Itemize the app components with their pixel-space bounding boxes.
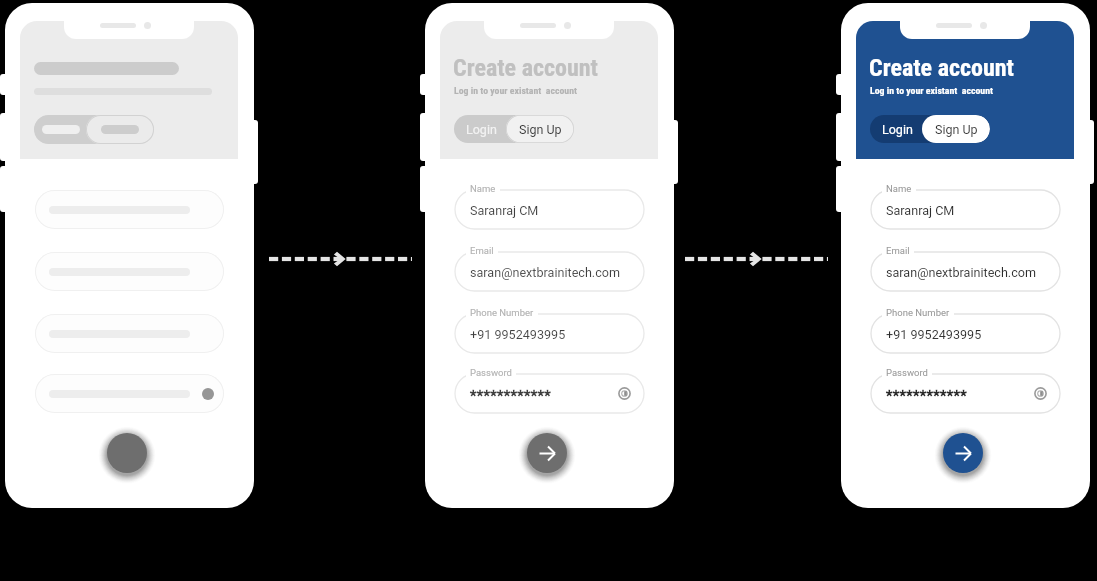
staticText: Login [882,122,913,137]
button[interactable] [35,314,224,353]
button[interactable]: Login [870,115,924,143]
button[interactable]: Sign Up [506,115,574,143]
staticText: Log in to your existant account [454,85,577,96]
button[interactable] [34,115,154,144]
staticText: saran@nextbrainitech.com [886,265,1036,280]
staticText: +91 9952493995 [886,327,982,342]
button[interactable]: saran@nextbrainitech.com [455,252,644,291]
staticText: Login [466,122,497,137]
button[interactable]: +91 9952493995 [455,314,644,353]
button[interactable]: Continue [527,433,567,473]
staticText: saran@nextbrainitech.com [470,265,620,280]
button[interactable] [35,190,224,229]
button[interactable]: Login [454,115,508,143]
button[interactable]: ************ [871,374,1060,413]
staticText: ************ [886,387,968,405]
staticText: Log in to your existant account [870,85,993,96]
staticText: Phone Number [886,307,950,318]
staticText: Saranraj CM [886,203,955,218]
staticText: Create account [869,54,1014,82]
button[interactable]: ************ [455,374,644,413]
button[interactable] [35,374,224,413]
staticText: Name [886,183,912,194]
staticText: Password [886,367,928,378]
staticText: Name [470,183,496,194]
button[interactable]: Saranraj CM [455,190,644,229]
staticText: Create account [453,54,598,82]
staticText: Password [470,367,512,378]
staticText: +91 9952493995 [470,327,566,342]
staticText: Saranraj CM [470,203,539,218]
button[interactable] [86,115,154,144]
staticText: Email [470,245,494,256]
staticText: Sign Up [935,122,978,137]
staticText: ************ [470,387,552,405]
button[interactable]: saran@nextbrainitech.com [871,252,1060,291]
button[interactable]: Saranraj CM [871,190,1060,229]
staticText: Phone Number [470,307,534,318]
button[interactable]: +91 9952493995 [871,314,1060,353]
staticText: Sign Up [519,122,562,137]
button[interactable]: Continue [943,433,983,473]
staticText: Email [886,245,910,256]
button[interactable]: Sign Up [922,115,990,143]
button[interactable] [35,252,224,291]
button[interactable]: Continue [107,433,147,473]
